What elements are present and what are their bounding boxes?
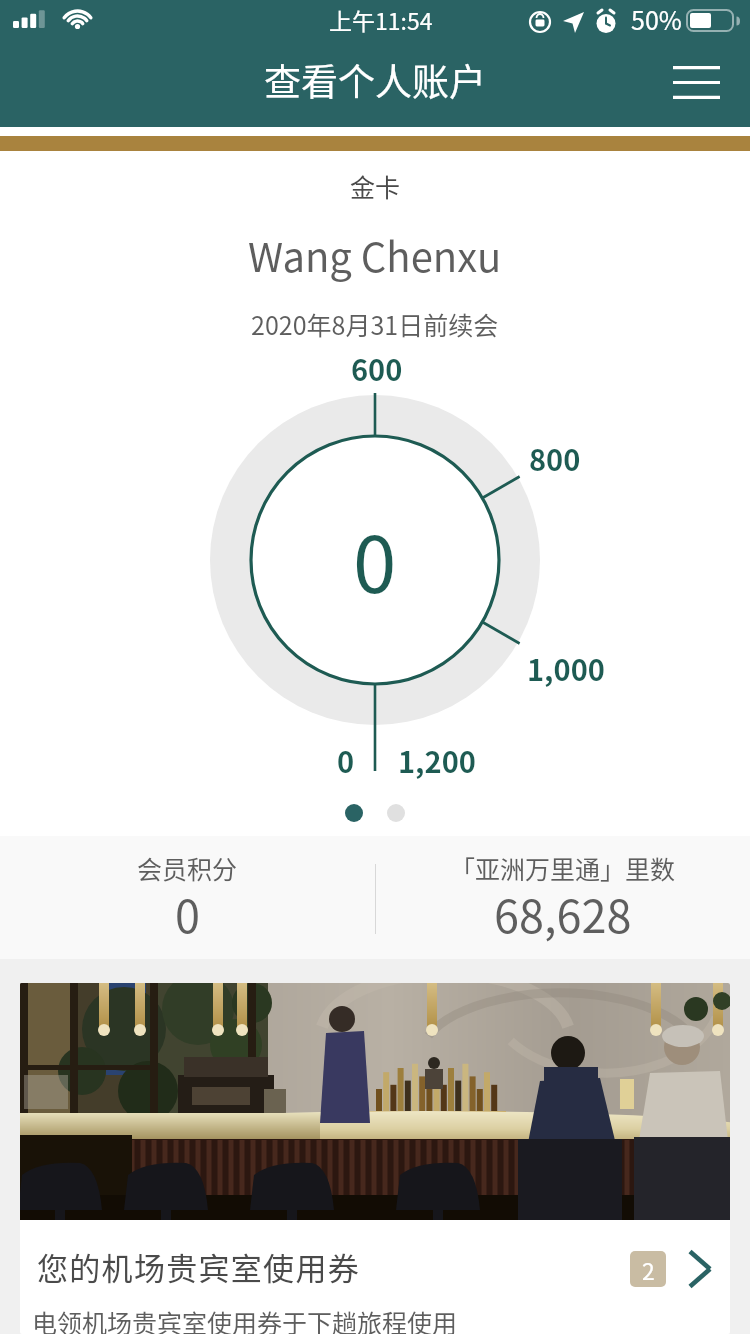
staticText: 上午11:54 [329,3,433,36]
staticText: 2 [642,1253,655,1286]
button[interactable]: Page 1 [345,804,363,822]
staticText: 电领机场贵宾室使用券于下趟旅程使用 [32,1304,458,1334]
staticText: 1,200 [398,739,476,781]
staticText: 68,628 [494,881,632,946]
button[interactable]: 「亚洲万里通」里数 [375,836,750,959]
staticText: 您的机场贵宾室使用券 [37,1244,360,1289]
staticText: 50% [631,1,682,37]
staticText: 800 [529,437,581,479]
staticText: 1,000 [527,647,605,689]
button[interactable]: Menu [657,51,736,113]
button[interactable]: 2 vouchers [630,1251,666,1287]
staticText: 0 [337,739,355,781]
button[interactable]: Page 2 [387,804,405,822]
staticText: 金卡 [350,168,401,204]
button[interactable]: 会员积分 [0,836,375,959]
staticText: 600 [351,347,403,389]
button[interactable]: 您的机场贵宾室使用券 [20,983,730,1334]
staticText: 会员积分 [137,850,238,886]
staticText: 0 [353,503,397,616]
staticText: Wang Chenxu [248,226,502,284]
staticText: 查看个人账户 [264,53,486,107]
staticText: 2020年8月31日前续会 [251,306,499,342]
other: Open [688,1250,712,1288]
staticText: 「亚洲万里通」里数 [450,850,676,886]
staticText: 0 [175,881,200,946]
